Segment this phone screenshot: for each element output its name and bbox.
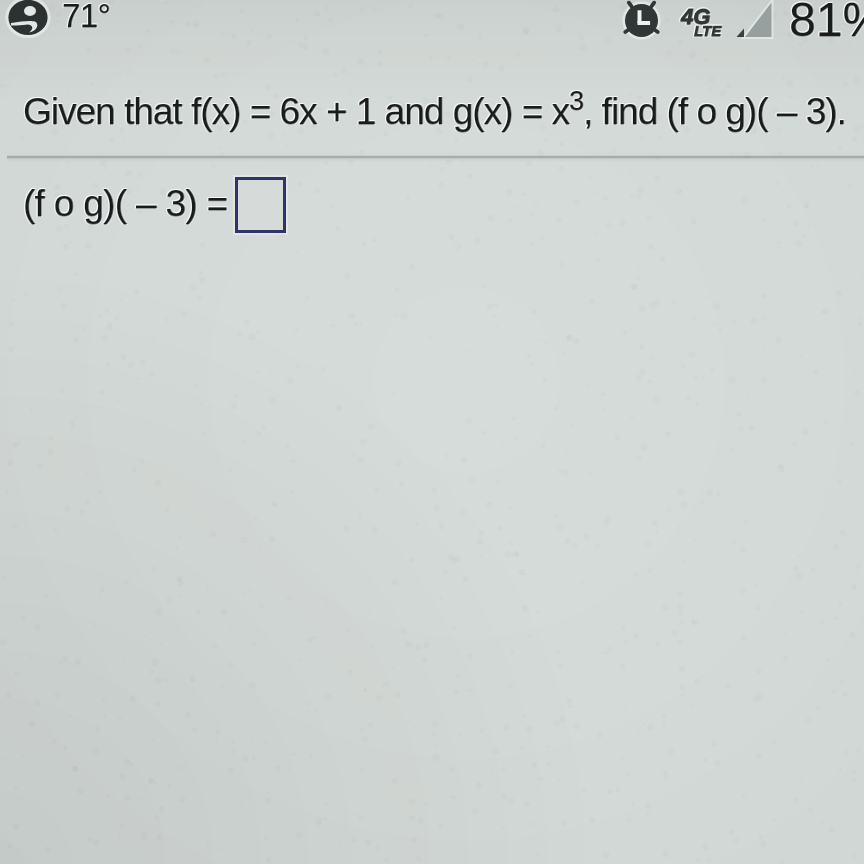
staticText: 81% bbox=[789, 0, 864, 42]
staticText: 71° bbox=[61, 0, 110, 35]
staticText: LTE bbox=[693, 22, 721, 39]
staticText: (f o g)( – 3) = bbox=[22, 184, 227, 225]
staticText: LTE bbox=[694, 21, 722, 38]
staticText: (f o g)( – 3) = bbox=[23, 182, 228, 223]
staticText: (f o g)( – 3) = bbox=[23, 183, 228, 224]
staticText: LTE bbox=[695, 22, 723, 39]
button[interactable]: Answer input box bbox=[235, 177, 286, 233]
button[interactable]: Alarm set bbox=[618, 0, 666, 48]
staticText: 71° bbox=[62, 0, 111, 35]
staticText: 4G bbox=[681, 5, 711, 30]
staticText: LTE bbox=[693, 23, 721, 40]
button[interactable]: Signal strength, 4G LTE bbox=[734, 0, 778, 44]
button[interactable]: Weather notification, 71 degrees bbox=[2, 0, 58, 44]
staticText: Given that f(x) = 6x + 1 and g(x) = x3, … bbox=[24, 86, 847, 132]
staticText: Given that f(x) = 6x + 1 and g(x) = x3, … bbox=[24, 86, 847, 132]
staticText: 4G bbox=[680, 5, 710, 30]
staticText: 71° bbox=[62, 0, 111, 33]
staticText: 71° bbox=[63, 0, 112, 34]
staticText: (f o g)( – 3) = bbox=[22, 183, 227, 224]
staticText: 4G bbox=[682, 4, 712, 29]
staticText: 4G bbox=[682, 3, 712, 28]
staticText: LTE bbox=[694, 23, 722, 40]
staticText: 81% bbox=[790, 0, 864, 42]
staticText: 71° bbox=[61, 0, 110, 34]
staticText: 81% bbox=[789, 0, 864, 40]
staticText: LTE bbox=[694, 22, 722, 39]
staticText: (f o g)( – 3) = bbox=[24, 184, 229, 225]
staticText: (f o g)( – 3) = bbox=[23, 184, 228, 225]
staticText: LTE bbox=[694, 23, 722, 40]
staticText: Given that f(x) = 6x + 1 and g(x) = x3, … bbox=[23, 87, 846, 133]
staticText: 81% bbox=[788, 0, 864, 41]
staticText: 81% bbox=[790, 0, 864, 40]
staticText: 4G bbox=[682, 5, 712, 30]
staticText: LTE bbox=[695, 22, 723, 39]
staticText: 4G bbox=[681, 4, 711, 29]
staticText: 81% bbox=[789, 0, 864, 42]
staticText: 71° bbox=[62, 0, 111, 34]
staticText: (f o g)( – 3) = bbox=[24, 183, 229, 224]
staticText: Given that f(x) = 6x + 1 and g(x) = x3, … bbox=[22, 87, 845, 133]
staticText: (f o g)( – 3) = bbox=[22, 182, 227, 223]
staticText: LTE bbox=[695, 23, 723, 40]
staticText: Given that f(x) = 6x + 1 and g(x) = x3, … bbox=[22, 85, 845, 131]
staticText: 4G bbox=[680, 4, 710, 29]
staticText: LTE bbox=[693, 21, 721, 38]
staticText: 4G bbox=[681, 5, 711, 30]
staticText: 81% bbox=[790, 0, 864, 41]
staticText: 81% bbox=[788, 0, 864, 42]
staticText: 71° bbox=[63, 0, 112, 35]
staticText: 71° bbox=[62, 0, 111, 35]
staticText: 81% bbox=[790, 0, 864, 41]
staticText: 4G bbox=[681, 3, 711, 28]
staticText: Given that f(x) = 6x + 1 and g(x) = x3, … bbox=[23, 85, 846, 131]
staticText: (f o g)( – 3) = bbox=[24, 182, 229, 223]
staticText: Given that f(x) = 6x + 1 and g(x) = x3, … bbox=[24, 85, 847, 131]
staticText: 81% bbox=[789, 0, 864, 41]
staticText: (f o g)( – 3) = bbox=[23, 184, 228, 225]
staticText: 71° bbox=[61, 0, 110, 33]
staticText: 71° bbox=[63, 0, 112, 33]
staticText: (f o g)( – 3) = bbox=[24, 183, 229, 224]
staticText: 71° bbox=[63, 0, 112, 34]
staticText: 4G bbox=[682, 4, 712, 29]
staticText: 81% bbox=[788, 0, 864, 40]
staticText: Given that f(x) = 6x + 1 and g(x) = x3, … bbox=[22, 86, 845, 132]
staticText: 4G bbox=[680, 3, 710, 28]
staticText: Given that f(x) = 6x + 1 and g(x) = x3, … bbox=[24, 87, 847, 133]
staticText: Given that f(x) = 6x + 1 and g(x) = x3, … bbox=[23, 87, 846, 133]
staticText: Given that f(x) = 6x + 1 and g(x) = x3, … bbox=[23, 86, 846, 132]
staticText: LTE bbox=[695, 21, 723, 38]
